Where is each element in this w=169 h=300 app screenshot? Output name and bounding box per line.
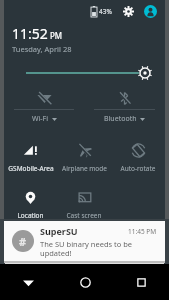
staticText: Auto-rotate [120, 164, 156, 173]
button[interactable]: # [4, 221, 165, 261]
button[interactable]: Settings [119, 2, 137, 20]
button[interactable]: Brightness [4, 63, 165, 83]
button[interactable]: Home [57, 264, 113, 300]
button[interactable]: Bluetooth [84, 87, 165, 135]
staticText: Cast screen [66, 211, 102, 219]
button[interactable]: Wi-Fi [4, 87, 84, 135]
staticText: Bluetooth [104, 114, 137, 124]
button[interactable]: Airplane mode [57, 135, 111, 182]
staticText: Location [17, 211, 44, 219]
button[interactable]: Cast screen [57, 182, 111, 219]
staticText: GSMobile-Area [8, 164, 54, 173]
button[interactable]: Location [4, 182, 57, 219]
staticText: SuperSU [40, 225, 78, 237]
staticText: 11:52 [12, 24, 48, 43]
button[interactable]: Back [0, 264, 57, 300]
staticText: 11:45 PM [128, 227, 157, 236]
staticText: PM [50, 30, 63, 41]
staticText: # [19, 234, 27, 249]
staticText: Wi-Fi [32, 114, 49, 124]
staticText: 43% [99, 7, 112, 16]
button[interactable]: Auto-rotate [111, 135, 165, 182]
staticText: Airplane mode [62, 164, 107, 173]
staticText: Tuesday, April 28 [12, 44, 72, 54]
button[interactable]: Recents [113, 264, 169, 300]
button[interactable]: User profile [141, 2, 159, 20]
staticText: The SU binary needs to be updated! [40, 239, 157, 258]
button[interactable]: GSMobile-Area [4, 135, 57, 182]
